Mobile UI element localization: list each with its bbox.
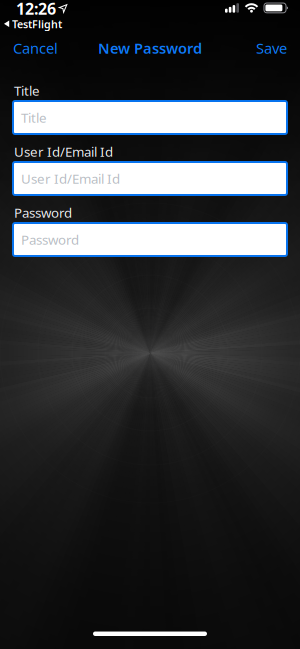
button[interactable]: Save — [256, 38, 287, 58]
staticText: Title — [21, 109, 47, 126]
staticText: Cancel — [13, 38, 58, 58]
staticText: User Id/Email Id — [14, 143, 113, 160]
staticText: Password — [14, 204, 72, 221]
staticText: TestFlight — [12, 17, 62, 31]
staticText: Title — [14, 82, 40, 99]
staticText: 12:26 — [16, 0, 56, 19]
staticText: New Password — [98, 38, 202, 58]
button[interactable]: User Id/Email Id — [13, 162, 287, 195]
staticText: User Id/Email Id — [21, 170, 120, 187]
button[interactable]: Cancel — [13, 38, 58, 58]
staticText: Password — [21, 231, 79, 248]
button[interactable]: Password — [13, 223, 287, 256]
staticText: Save — [256, 38, 287, 58]
button[interactable]: Title — [13, 101, 287, 134]
